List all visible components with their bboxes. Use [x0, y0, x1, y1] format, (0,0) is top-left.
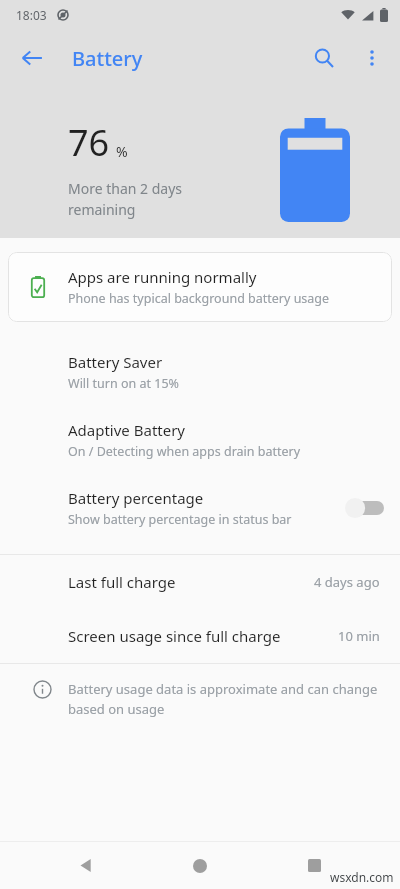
staticText: Phone has typical background battery usa… [68, 290, 330, 307]
button[interactable]: More options [348, 34, 396, 82]
staticText: Show battery percentage in status bar [68, 511, 292, 528]
staticText: Apps are running normally [68, 267, 257, 287]
staticText: based on usage [68, 700, 165, 718]
staticText: Adaptive Battery [68, 420, 186, 440]
staticText: Battery [72, 45, 143, 72]
staticText: % [116, 142, 128, 161]
button[interactable]: Recent apps [286, 842, 342, 889]
button[interactable]: Home [172, 842, 228, 889]
staticText: remaining [68, 200, 136, 219]
button[interactable]: Battery percentage toggle [344, 496, 384, 520]
staticText: wsxdn.com [330, 869, 394, 885]
button[interactable]: Adaptive Battery [0, 406, 400, 474]
button[interactable]: Last full charge [0, 555, 400, 609]
button[interactable]: Screen usage since full charge [0, 609, 400, 663]
button[interactable]: Back [8, 34, 56, 82]
staticText: Battery Saver [68, 352, 163, 372]
button[interactable]: Back [58, 842, 114, 889]
staticText: More than 2 days [68, 179, 183, 198]
button[interactable]: Battery Saver [0, 338, 400, 406]
button[interactable]: Search [300, 34, 348, 82]
staticText: Battery percentage [68, 488, 204, 508]
staticText: 76 [68, 118, 110, 167]
button[interactable]: Apps are running normally [8, 252, 392, 322]
staticText: 10 min [338, 627, 380, 645]
staticText: Will turn on at 15% [68, 375, 179, 392]
staticText: Battery usage data is approximate and ca… [68, 680, 378, 698]
staticText: On / Detecting when apps drain battery [68, 443, 301, 460]
staticText: Last full charge [68, 572, 314, 592]
button[interactable]: Battery percentage [0, 474, 400, 542]
staticText: 4 days ago [314, 573, 380, 591]
staticText: 18:03 [16, 7, 47, 23]
staticText: Screen usage since full charge [68, 626, 338, 646]
